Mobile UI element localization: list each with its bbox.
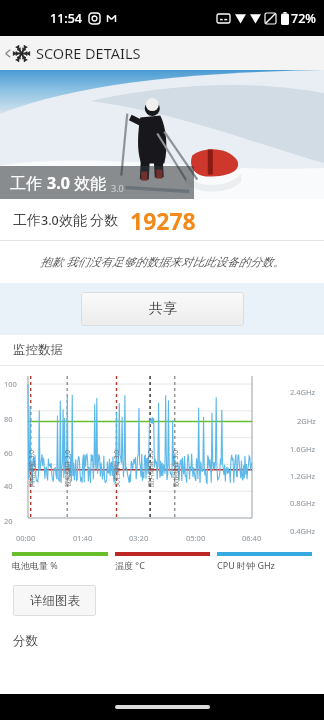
staticText: 00:00 <box>16 533 36 543</box>
staticText: 2GHz <box>297 416 316 426</box>
staticText: 01:40 <box>73 533 93 543</box>
staticText: 工作 <box>13 212 41 230</box>
staticText: 温度 °C <box>115 559 145 571</box>
staticText: 06:40 <box>242 533 262 543</box>
staticText: 3.0 <box>111 182 124 194</box>
staticText: 效能 <box>59 212 87 230</box>
staticText: 80 <box>4 414 13 424</box>
staticText: 05:00 <box>186 533 206 543</box>
staticText: 视频编辑 3.0 <box>63 450 72 487</box>
staticText: 分数 <box>13 633 38 649</box>
staticText: 数据操作 3.0 <box>171 450 180 487</box>
button[interactable]: 共享 <box>81 292 244 326</box>
staticText: 19278 <box>130 205 196 236</box>
staticText: 共享 <box>149 300 177 318</box>
staticText: 效能 <box>70 172 111 194</box>
staticText: 72% <box>291 10 316 27</box>
button[interactable]: Back <box>0 36 324 70</box>
staticText: 文档编写 3.0 <box>112 450 121 487</box>
staticText: 2.4GHz <box>290 387 316 397</box>
staticText: 3.0 <box>47 172 70 194</box>
staticText: 1.6GHz <box>290 444 316 454</box>
staticText: CPU 时钟 GHz <box>217 559 275 571</box>
staticText: 详细图表 <box>30 593 80 609</box>
staticText: 网络浏览 3.0 <box>27 450 36 487</box>
staticText: 60 <box>4 448 13 458</box>
other: Back <box>3 49 12 58</box>
staticText: 抱歉 我们没有足够的数据来对比此设备的分数。 <box>40 254 285 270</box>
staticText: 20 <box>4 516 13 526</box>
staticText: 0.8GHz <box>290 498 316 508</box>
staticText: 电池电量 % <box>12 559 58 571</box>
staticText: 0.4GHz <box>290 526 316 536</box>
staticText: 100 <box>4 379 17 389</box>
button[interactable]: 详细图表 <box>13 585 96 616</box>
staticText: SCORE DETAILS <box>36 43 141 63</box>
staticText: 分数 <box>90 212 118 230</box>
staticText: 工作 <box>10 172 47 194</box>
staticText: 03:20 <box>129 533 149 543</box>
staticText: 1.2GHz <box>290 471 316 481</box>
staticText: 11:54 <box>50 10 83 27</box>
staticText: 3.0 <box>41 212 59 229</box>
staticText: 图片编辑 3.0 <box>146 450 155 487</box>
staticText: 40 <box>4 481 13 491</box>
staticText: 监控数据 <box>13 342 63 358</box>
